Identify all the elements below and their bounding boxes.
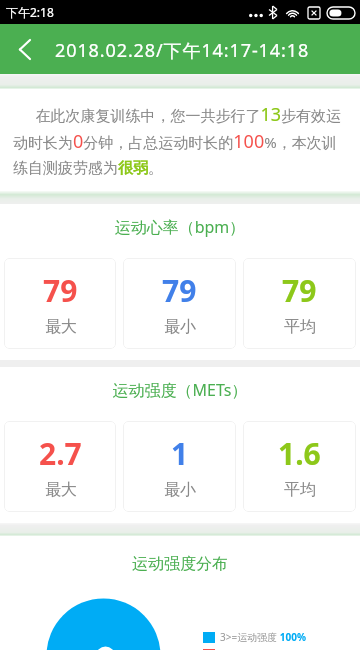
staticText: 下午2:18 <box>6 4 54 20</box>
staticText: 平均 <box>284 480 316 500</box>
staticText: 运动强度（METs） <box>0 379 360 401</box>
staticText: 在此次康复训练中，您一共步行了13步有效运动时长为0分钟，占总运动时长的100%… <box>13 102 342 177</box>
button[interactable]: 79 <box>243 258 356 349</box>
button[interactable]: 79 <box>4 258 116 349</box>
staticText: 最小 <box>164 480 196 500</box>
staticText: 最大 <box>45 317 77 337</box>
staticText: 1.6 <box>278 433 321 474</box>
button[interactable]: 1 <box>123 421 236 512</box>
staticText: 2.7 <box>39 433 82 474</box>
button[interactable]: 2.7 <box>4 421 116 512</box>
staticText: 2018.02.28/下午14:17-14:18 <box>55 38 310 63</box>
button[interactable]: 79 <box>123 258 236 349</box>
staticText: 1 <box>171 433 189 474</box>
button[interactable]: 1.6 <box>243 421 356 512</box>
staticText: 最小 <box>164 317 196 337</box>
staticText: 运动强度分布 <box>0 554 360 574</box>
staticText: 79 <box>43 270 78 311</box>
staticText: 最大 <box>45 480 77 500</box>
staticText: 79 <box>162 270 197 311</box>
staticText: 3>=运动强度 100% <box>220 630 306 644</box>
staticText: 79 <box>282 270 317 311</box>
staticText: 平均 <box>284 317 316 337</box>
staticText: 运动心率（bpm） <box>0 216 360 238</box>
button[interactable]: Back <box>0 24 48 74</box>
